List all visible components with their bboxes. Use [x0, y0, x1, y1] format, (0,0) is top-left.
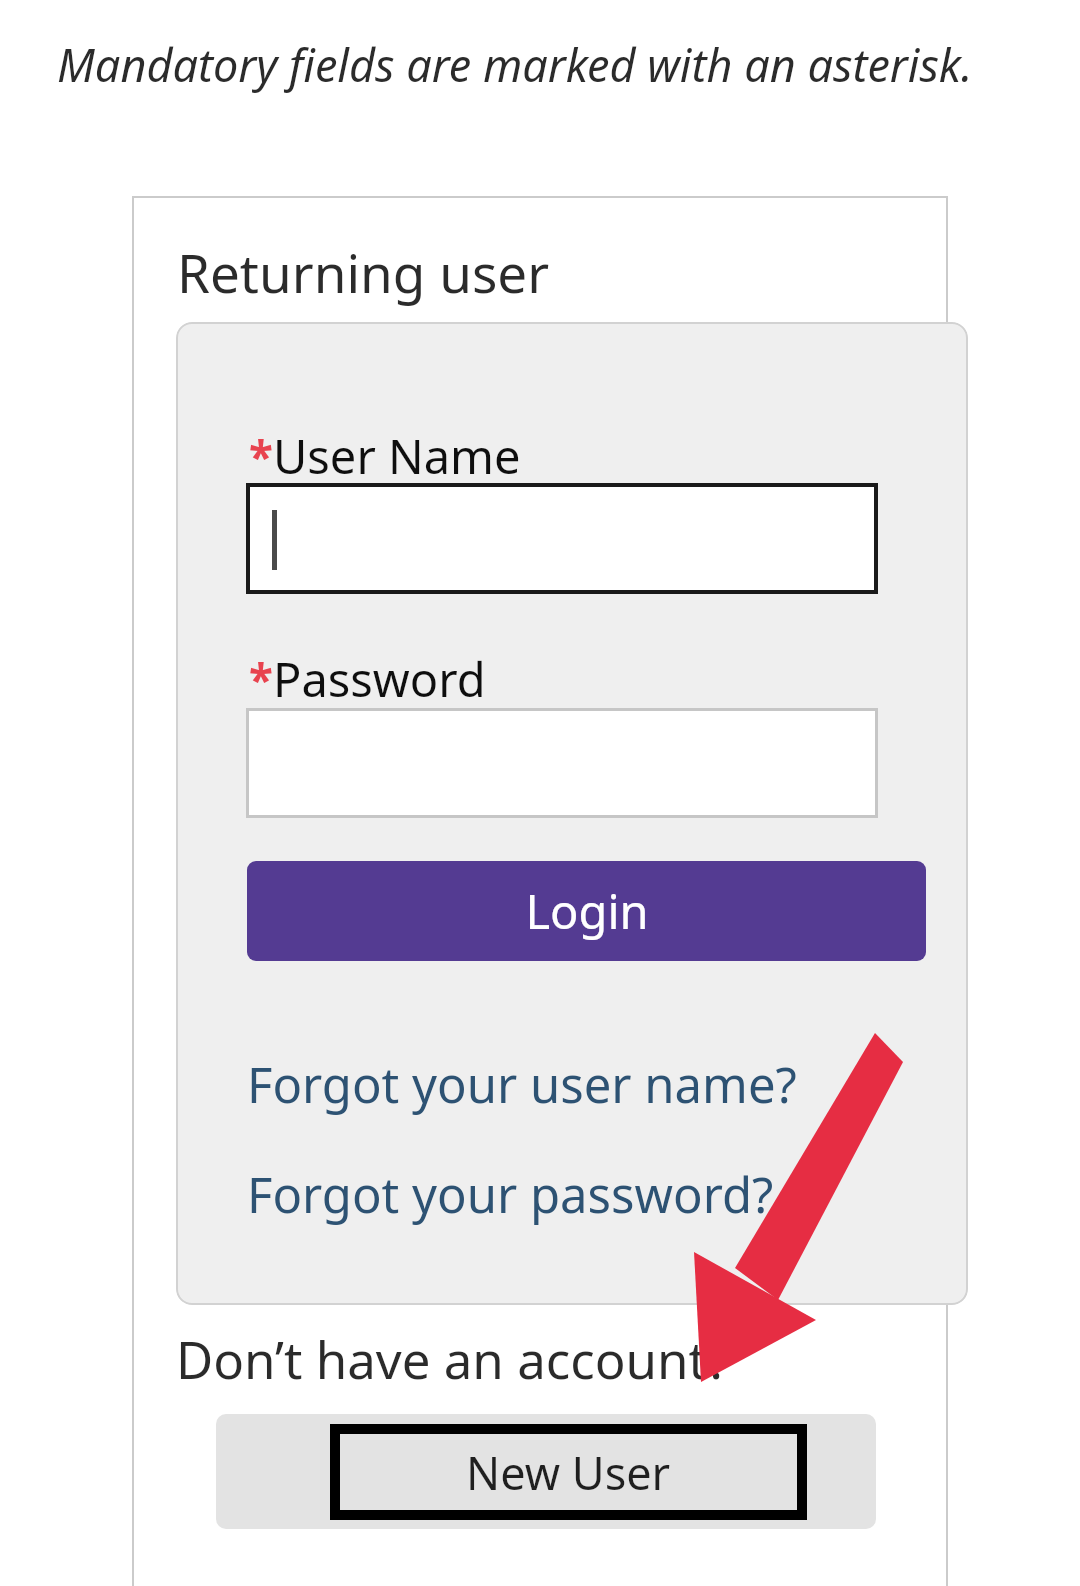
- button[interactable]: New User: [340, 1434, 797, 1510]
- staticText: New User: [466, 1442, 671, 1503]
- staticText: User Name: [273, 424, 521, 488]
- staticText: Password: [273, 647, 486, 711]
- staticText: *: [249, 426, 273, 486]
- button[interactable]: User Name text field: [246, 483, 878, 594]
- button[interactable]: Forgot your user name?: [247, 1051, 797, 1118]
- staticText: Login: [525, 879, 649, 943]
- staticText: Returning user: [177, 236, 550, 308]
- staticText: *: [249, 649, 273, 709]
- button[interactable]: Password text field: [246, 708, 878, 818]
- staticText: Mandatory fields are marked with an aste…: [57, 34, 973, 95]
- staticText: Forgot your user name?: [247, 1051, 797, 1118]
- staticText: Forgot your password?: [247, 1161, 774, 1228]
- button[interactable]: Login: [247, 861, 926, 961]
- staticText: Don’t have an account?: [176, 1324, 730, 1393]
- button[interactable]: Forgot your password?: [247, 1161, 774, 1228]
